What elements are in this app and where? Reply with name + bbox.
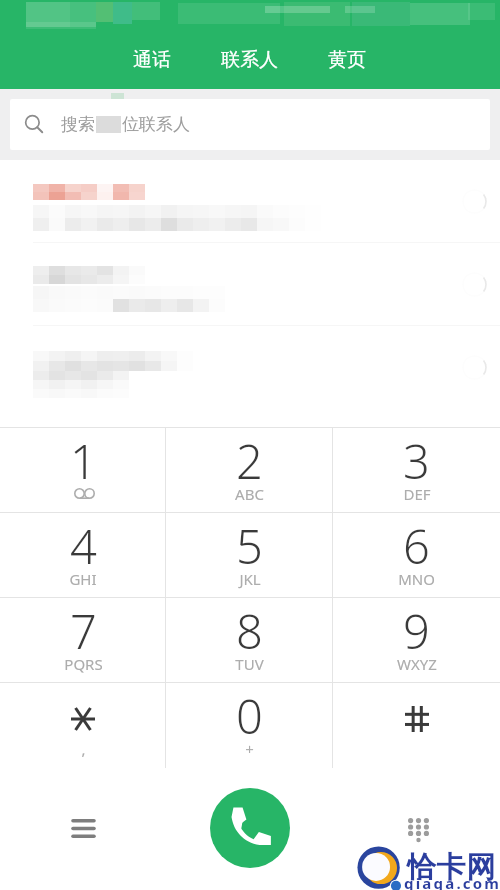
button[interactable]: 搜索: [10, 99, 490, 150]
staticText: 联系人: [221, 48, 278, 72]
staticText: JKL: [239, 569, 261, 589]
button[interactable]: 0: [166, 683, 333, 768]
button[interactable]: 9: [333, 598, 500, 682]
staticText: 4: [70, 514, 97, 578]
staticText: 9: [403, 599, 430, 663]
button[interactable]: Call details: [0, 160, 500, 242]
button[interactable]: ,: [0, 683, 166, 768]
staticText: 搜索: [61, 114, 95, 135]
button[interactable]: 7: [0, 598, 166, 682]
staticText: 黄页: [328, 48, 366, 72]
staticText: 3: [403, 429, 430, 493]
staticText: ABC: [235, 484, 264, 504]
button[interactable]: 5: [166, 513, 333, 597]
staticText: DEF: [403, 484, 431, 504]
button[interactable]: [333, 683, 500, 768]
staticText: 5: [236, 514, 263, 578]
staticText: MNO: [398, 569, 435, 589]
button[interactable]: Dialpad: [382, 794, 454, 866]
button[interactable]: 黄页: [309, 36, 385, 80]
staticText: 6: [403, 514, 430, 578]
staticText: 1: [70, 429, 97, 493]
button[interactable]: Call log options: [47, 792, 119, 864]
button[interactable]: Call: [210, 788, 290, 868]
button[interactable]: 通话: [114, 36, 190, 80]
staticText: ,: [81, 739, 86, 759]
button[interactable]: 3: [333, 428, 500, 512]
staticText: 恰卡网: [407, 849, 496, 886]
button[interactable]: 2: [166, 428, 333, 512]
button[interactable]: 6: [333, 513, 500, 597]
staticText: WXYZ: [397, 654, 437, 674]
staticText: 2: [236, 429, 263, 493]
staticText: GHI: [69, 569, 97, 589]
button[interactable]: 8: [166, 598, 333, 682]
staticText: 通话: [133, 48, 171, 72]
staticText: +: [245, 739, 254, 759]
staticText: qiaqa.com: [404, 873, 500, 890]
button[interactable]: 4: [0, 513, 166, 597]
staticText: TUV: [235, 654, 264, 674]
button[interactable]: 联系人: [211, 36, 287, 80]
button[interactable]: 1: [0, 428, 166, 512]
button[interactable]: Call details: [0, 243, 500, 325]
staticText: 7: [70, 599, 97, 663]
staticText: 0: [236, 684, 263, 748]
staticText: 8: [236, 599, 263, 663]
button[interactable]: Call details: [0, 326, 500, 408]
staticText: 位联系人: [122, 114, 190, 135]
staticText: PQRS: [64, 654, 103, 674]
